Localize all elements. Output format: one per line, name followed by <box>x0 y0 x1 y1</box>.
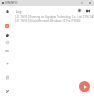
button[interactable]: Network <box>3 59 11 67</box>
button[interactable]: Close <box>86 0 94 6</box>
button[interactable]: Report <box>3 73 11 81</box>
button[interactable]: Minimize <box>78 0 86 6</box>
staticText: HWiNFO <box>5 1 18 5</box>
button[interactable]: Monitor <box>3 47 11 55</box>
button[interactable]: Save log <box>76 7 83 14</box>
button[interactable]: Alerts <box>3 22 11 30</box>
button[interactable]: Plugins <box>3 31 11 39</box>
button[interactable]: Sensors <box>3 38 11 46</box>
button[interactable]: Start monitoring <box>79 81 90 92</box>
button[interactable]: Home <box>3 7 11 15</box>
staticText: [ 21:18:55 ] 64-bit Microsoft Windows 10… <box>15 19 81 23</box>
button[interactable]: Tools <box>3 87 11 95</box>
staticText: [ 21:18:55 ] Running on Gigabyte Technol… <box>15 15 94 19</box>
staticText: Log <box>16 10 22 14</box>
button[interactable]: Clear log <box>84 7 91 14</box>
